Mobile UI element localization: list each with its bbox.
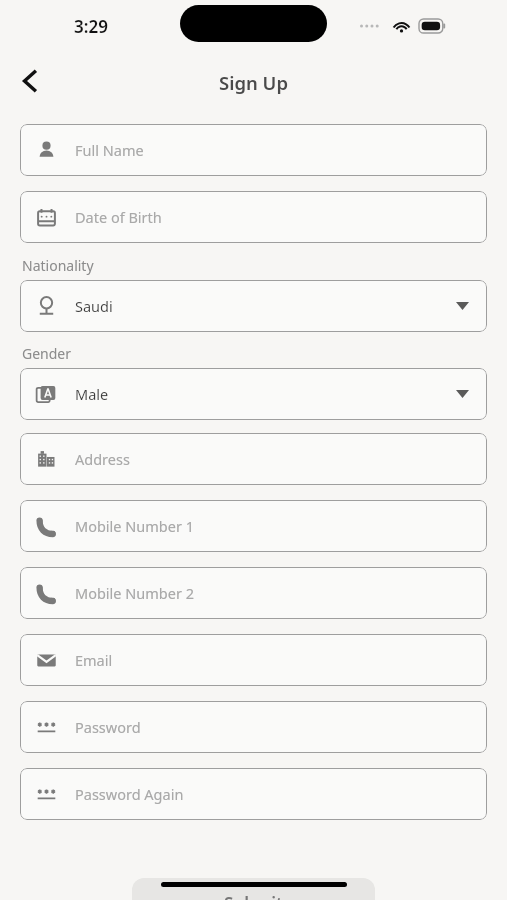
button[interactable]: Date of Birth [20, 191, 487, 243]
staticText: Email [75, 650, 113, 670]
button[interactable]: Mobile Number 1 [20, 500, 487, 552]
button[interactable]: Submit [132, 878, 375, 900]
button[interactable]: Male [20, 368, 487, 420]
staticText: Nationality [22, 256, 94, 275]
staticText: Mobile Number 2 [75, 583, 194, 603]
staticText: Submit [224, 892, 283, 900]
button[interactable]: Password [20, 701, 487, 753]
button[interactable]: Email [20, 634, 487, 686]
staticText: Gender [22, 344, 72, 363]
button[interactable]: Full Name [20, 124, 487, 176]
button[interactable]: Password Again [20, 768, 487, 820]
staticText: Password Again [75, 784, 184, 804]
staticText: Male [75, 384, 456, 404]
button[interactable]: Saudi [20, 280, 487, 332]
staticText: 3:29 [74, 15, 108, 38]
button[interactable]: Back [8, 59, 52, 103]
staticText: Full Name [75, 140, 144, 160]
staticText: Mobile Number 1 [75, 516, 194, 536]
staticText: Address [75, 449, 130, 469]
staticText: Date of Birth [75, 207, 162, 227]
button[interactable]: Address [20, 433, 487, 485]
staticText: Saudi [75, 296, 456, 316]
button[interactable]: Mobile Number 2 [20, 567, 487, 619]
staticText: Sign Up [219, 70, 289, 95]
staticText: Password [75, 717, 141, 737]
